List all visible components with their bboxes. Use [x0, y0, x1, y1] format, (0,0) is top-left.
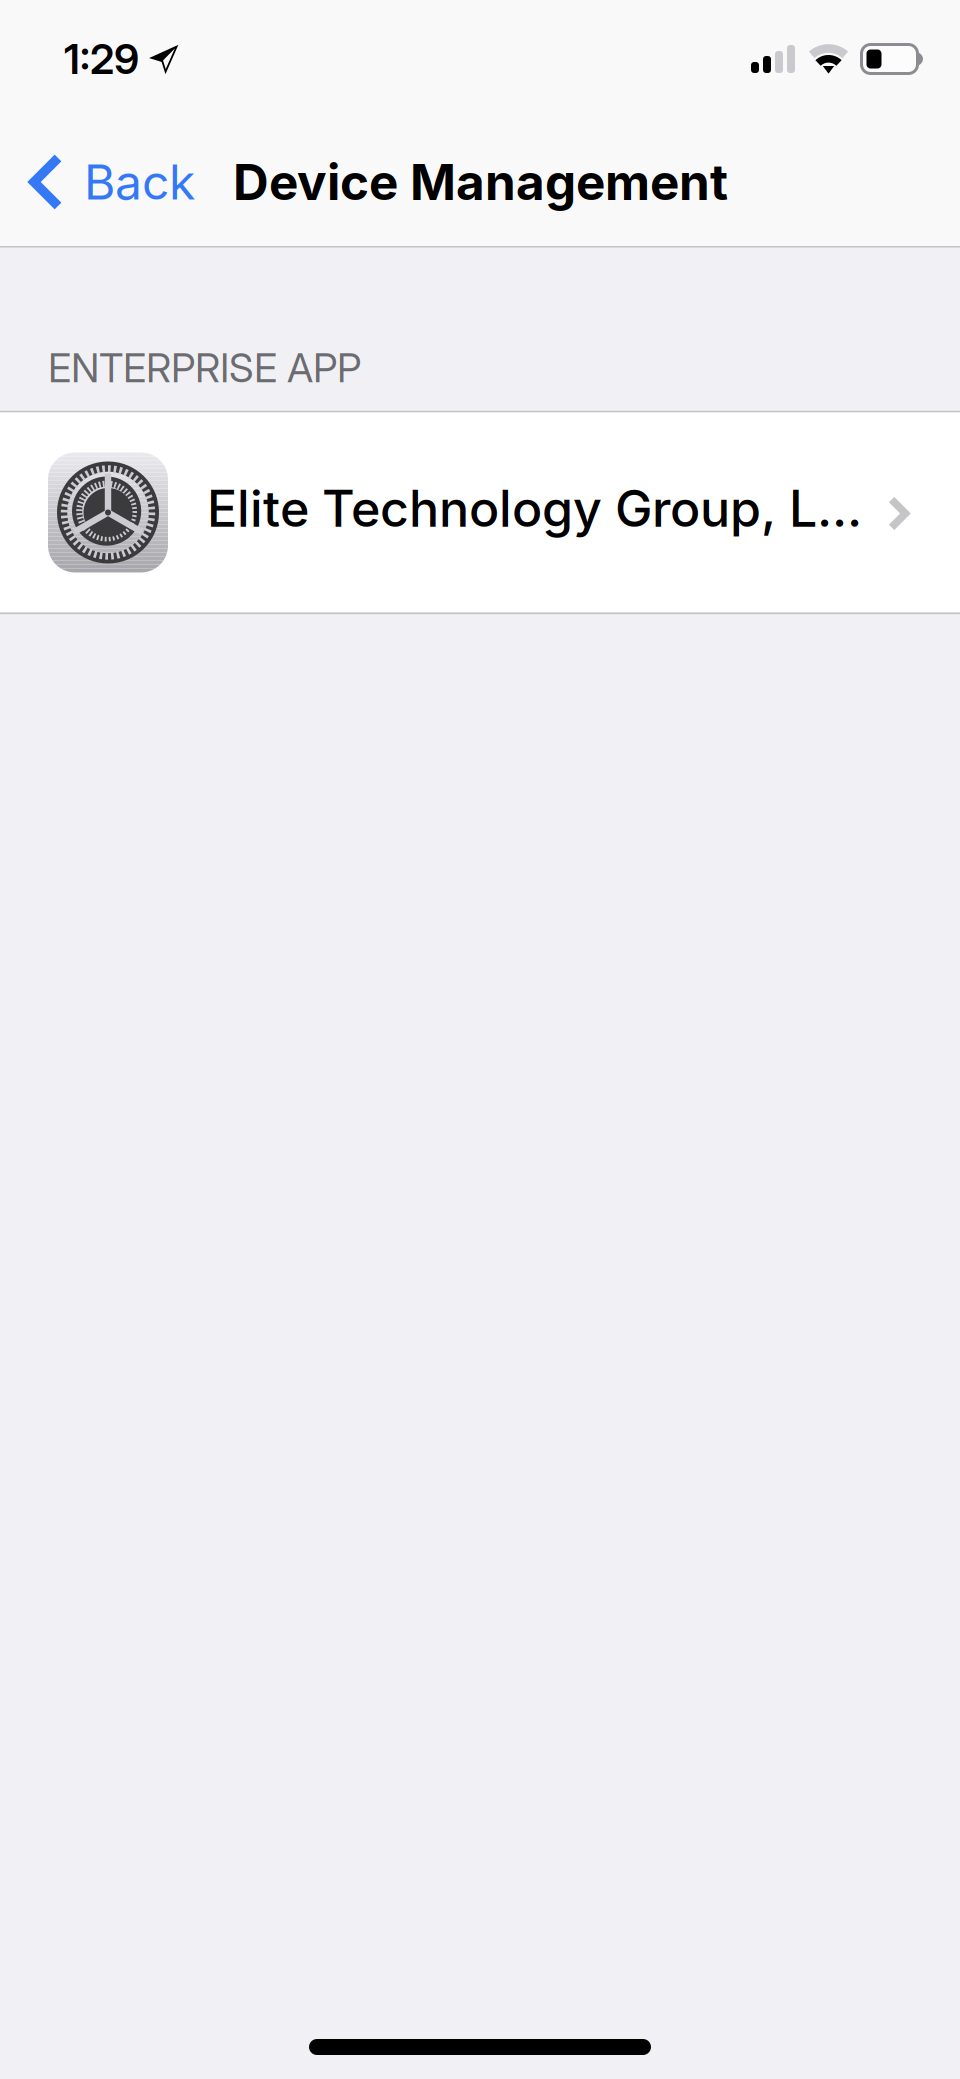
staticText: Elite Technology Group, L...: [207, 478, 862, 539]
staticText: Back: [84, 153, 195, 211]
staticText: Device Management: [233, 152, 728, 212]
staticText: 1:29: [64, 34, 139, 84]
staticText: ENTERPRISE APP: [48, 344, 361, 392]
button[interactable]: Elite Technology Group, L...: [0, 412, 960, 612]
button[interactable]: Back: [0, 118, 198, 246]
